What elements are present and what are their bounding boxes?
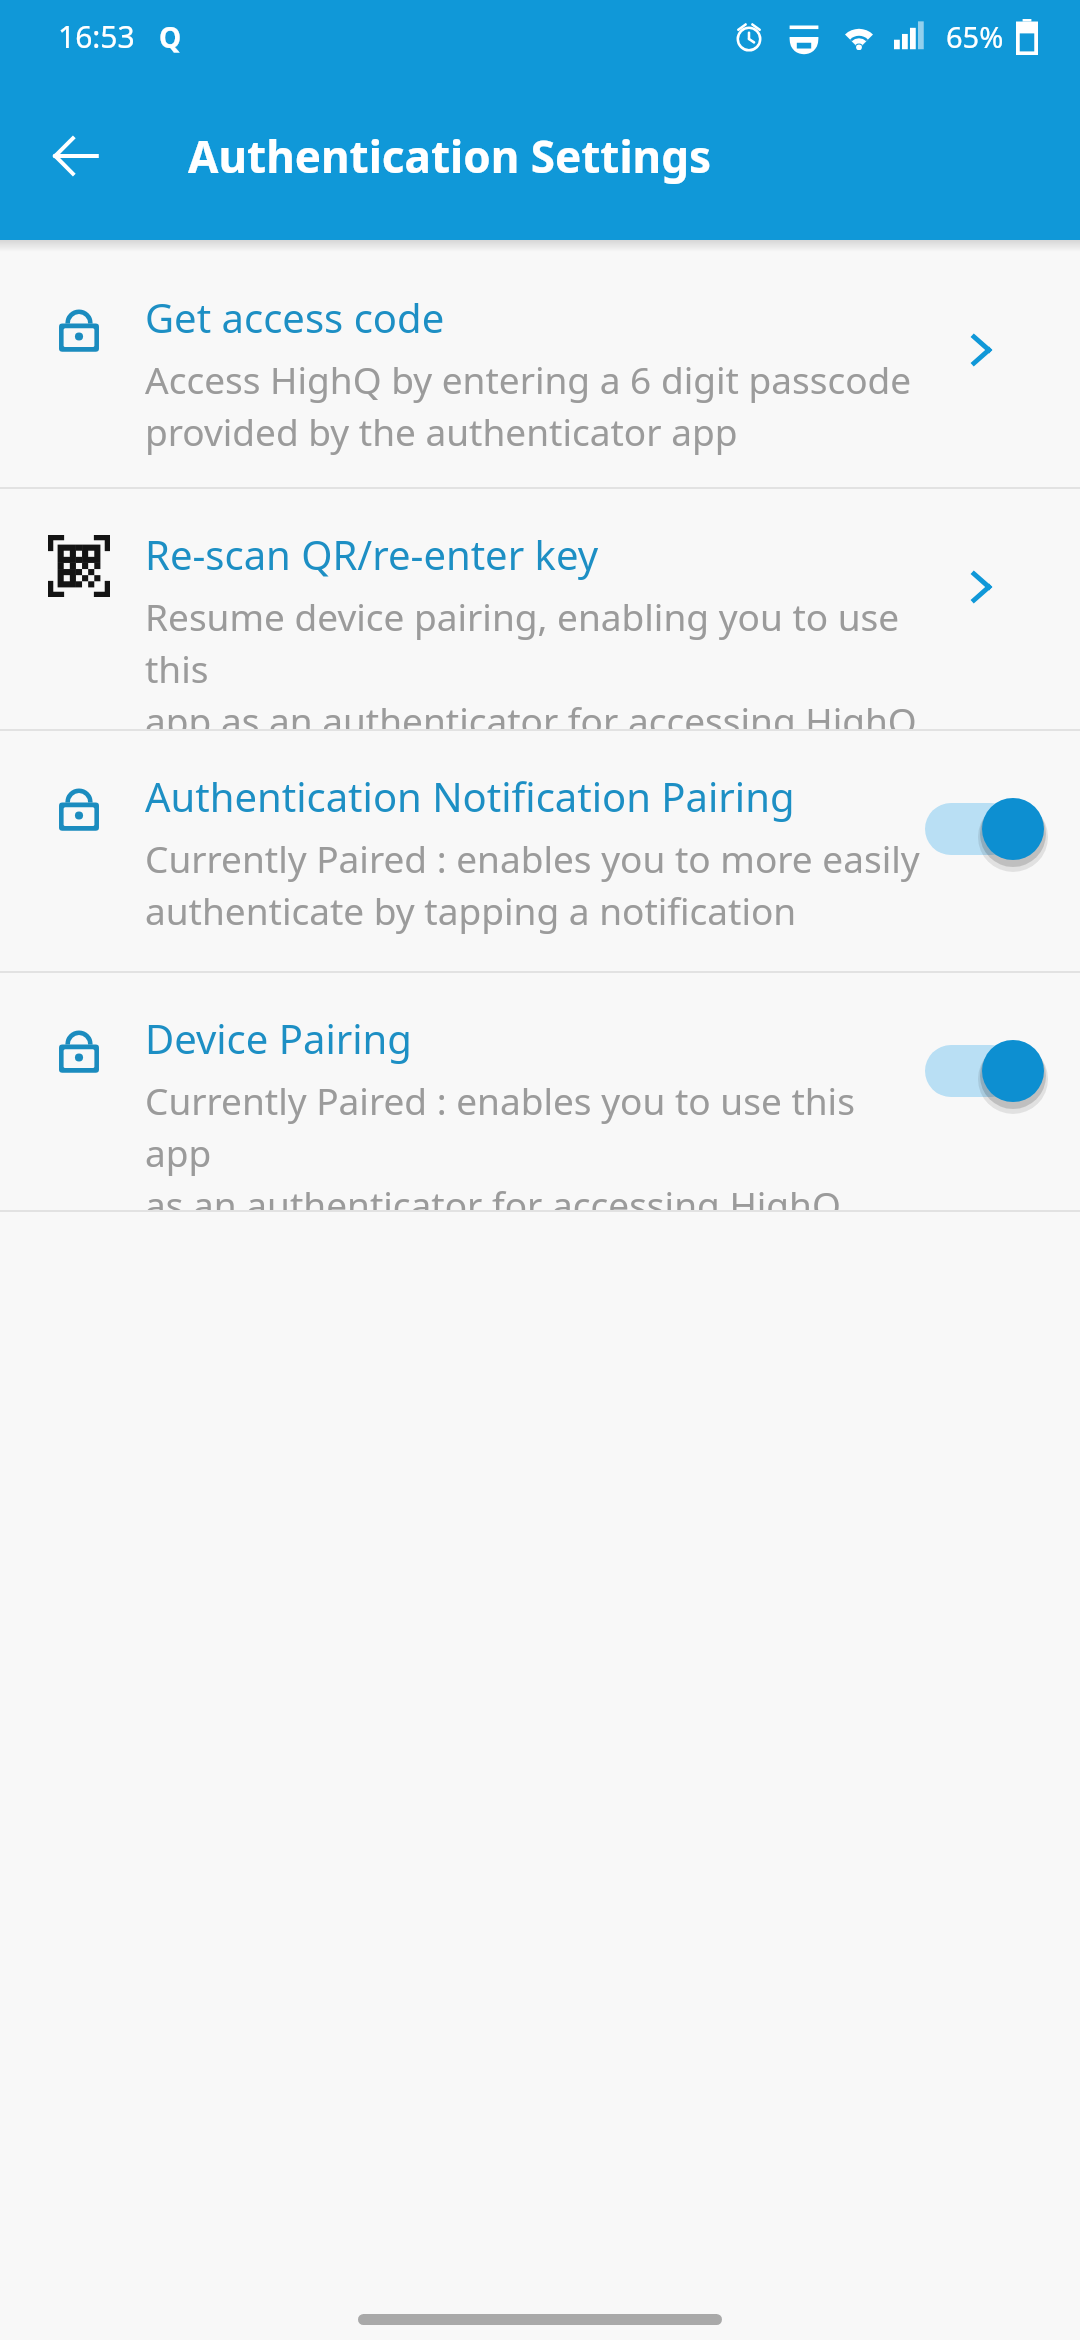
button[interactable]: Re-scan QR/re-enter key: [0, 489, 1080, 729]
staticText: Currently Paired : enables you to more e…: [145, 833, 920, 936]
button[interactable]: Open: [938, 544, 1024, 630]
staticText: Authentication Notification Pairing: [145, 769, 795, 823]
staticText: Access HighQ by entering a 6 digit passc…: [145, 354, 912, 457]
staticText: Q: [159, 18, 182, 56]
button[interactable]: Open: [938, 307, 1024, 393]
staticText: Currently Paired : enables you to use th…: [145, 1075, 930, 1210]
button[interactable]: Get access code: [0, 252, 1080, 487]
staticText: Re-scan QR/re-enter key: [145, 527, 599, 581]
button[interactable]: Device Pairing: [0, 973, 1080, 1210]
staticText: Resume device pairing, enabling you to u…: [145, 591, 930, 729]
staticText: Get access code: [145, 290, 445, 344]
button[interactable]: Toggle: [921, 1031, 1041, 1111]
staticText: Device Pairing: [145, 1011, 412, 1065]
button[interactable]: Authentication Notification Pairing: [0, 731, 1080, 971]
staticText: 65%: [946, 17, 1004, 56]
staticText: 16:53: [58, 16, 135, 57]
button[interactable]: Toggle: [921, 789, 1041, 869]
button[interactable]: Back: [30, 111, 120, 201]
staticText: Authentication Settings: [188, 126, 712, 186]
